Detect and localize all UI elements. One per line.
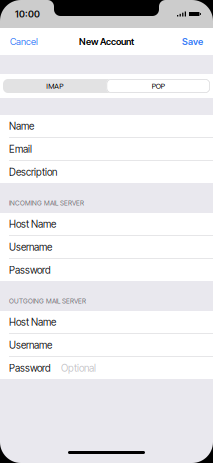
staticText: Username (9, 241, 52, 253)
button[interactable]: Username (0, 334, 213, 356)
button[interactable]: Save (174, 28, 213, 55)
staticText: Password (9, 264, 51, 276)
staticText: Optional (61, 362, 96, 374)
staticText: OUTGOING MAIL SERVER (9, 297, 86, 305)
staticText: Host Name (9, 218, 56, 230)
button[interactable]: Cancel (0, 28, 46, 55)
button[interactable]: Name (0, 115, 213, 137)
button[interactable]: POP (106, 79, 210, 93)
button[interactable]: Host Name (0, 311, 213, 333)
button[interactable]: IMAP (3, 79, 106, 93)
button[interactable]: Host Name (0, 213, 213, 235)
staticText: Host Name (9, 316, 56, 328)
staticText: Cancel (10, 36, 38, 47)
staticText: Username (9, 339, 52, 351)
button[interactable]: Password (0, 357, 213, 379)
button[interactable]: Description (0, 161, 213, 183)
staticText: INCOMING MAIL SERVER (9, 199, 84, 207)
button[interactable]: Email (0, 138, 213, 160)
staticText: Email (9, 143, 32, 155)
staticText: Description (9, 166, 57, 178)
staticText: POP (152, 82, 165, 90)
staticText: New Account (79, 36, 134, 47)
staticText: IMAP (46, 82, 63, 90)
staticText: 10:00 (15, 8, 40, 20)
button[interactable]: Username (0, 236, 213, 258)
button[interactable]: Password (0, 259, 213, 281)
staticText: Name (9, 120, 34, 132)
staticText: Save (182, 36, 203, 47)
staticText: Password (9, 362, 51, 374)
